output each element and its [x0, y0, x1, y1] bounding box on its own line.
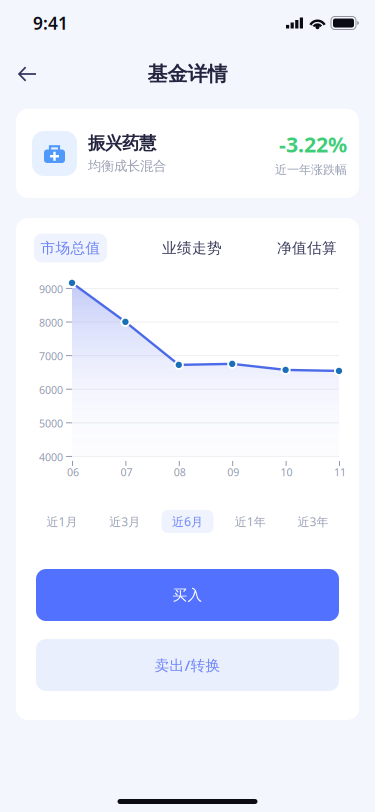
staticText: 近3年	[297, 513, 328, 529]
staticText: 7000	[39, 349, 63, 363]
staticText: 近1月	[46, 513, 77, 529]
button[interactable]: 卖出/转换	[36, 639, 339, 691]
staticText: 9:41	[33, 11, 68, 34]
staticText: 11	[334, 465, 346, 479]
button[interactable]: 近6月	[161, 510, 213, 533]
staticText: 基金详情	[147, 62, 227, 86]
staticText: 5000	[39, 416, 63, 430]
staticText: 业绩走势	[162, 239, 222, 257]
staticText: 6000	[39, 383, 63, 397]
staticText: 06	[67, 465, 79, 479]
staticText: -3.22%	[279, 130, 347, 158]
staticText: 振兴药慧	[88, 133, 156, 154]
button[interactable]: 近1年	[224, 510, 276, 533]
button[interactable]: 近3年	[287, 510, 339, 533]
staticText: 10	[281, 465, 293, 479]
staticText: 07	[120, 465, 132, 479]
button[interactable]: Back	[5, 52, 50, 96]
staticText: 卖出/转换	[154, 655, 220, 675]
staticText: 近1年	[235, 513, 266, 529]
staticText: 09	[227, 465, 239, 479]
button[interactable]: 近3月	[99, 510, 151, 533]
staticText: 买入	[172, 586, 202, 604]
staticText: 近3月	[109, 513, 140, 529]
staticText: 近6月	[172, 513, 203, 529]
button[interactable]: 净值估算	[277, 232, 337, 264]
staticText: 8000	[39, 315, 63, 330]
button[interactable]: 近1月	[36, 510, 88, 533]
button[interactable]: 买入	[36, 569, 339, 621]
staticText: 均衡成长混合	[88, 158, 166, 174]
staticText: 08	[174, 465, 186, 479]
staticText: 4000	[39, 450, 63, 464]
staticText: 9000	[39, 282, 63, 296]
staticText: 净值估算	[277, 239, 337, 257]
staticText: 近一年涨跌幅	[275, 162, 347, 177]
staticText: 市场总值	[40, 239, 100, 257]
button[interactable]: 业绩走势	[162, 232, 222, 264]
button[interactable]: 市场总值	[34, 233, 107, 262]
